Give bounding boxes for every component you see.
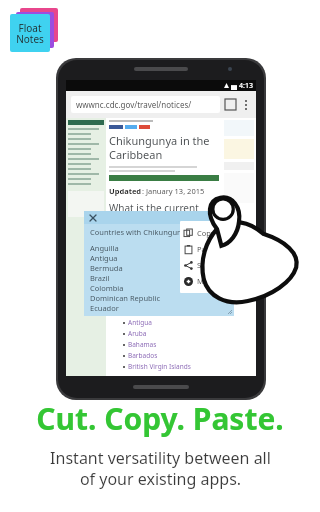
staticText: Paste: [197, 244, 217, 254]
button[interactable]: Barbados: [123, 351, 158, 360]
staticText: 4:13: [239, 81, 253, 91]
button[interactable]: Share: [180, 257, 232, 273]
staticText: Aruba: [128, 329, 147, 338]
staticText: Instant versatility between all of your …: [50, 447, 271, 490]
staticText: Bahamas: [128, 340, 157, 349]
button[interactable]: More: [180, 273, 232, 289]
button[interactable]: Float Notes logo: [4, 2, 66, 58]
button[interactable]: Aruba: [123, 329, 147, 338]
staticText: Barbados: [128, 351, 158, 360]
button[interactable]: Bahamas: [123, 340, 157, 349]
staticText: Updated: [109, 186, 142, 196]
staticText: British Virgin Islands: [128, 362, 191, 371]
button[interactable]: Paste: [180, 241, 232, 257]
staticText: Chikungunya in the Caribbean: [109, 133, 210, 162]
staticText: In December 2013, the World Health: [109, 229, 219, 249]
staticText: More: [197, 276, 216, 286]
button[interactable]: Tabs: [225, 99, 236, 110]
staticText: Share: [197, 260, 218, 270]
staticText: Anguilla: [90, 243, 119, 253]
staticText: Antigua: [90, 253, 118, 263]
staticText: : January 13, 2015: [142, 186, 205, 196]
button[interactable]: British Virgin Islands: [123, 362, 191, 371]
staticText: wwwnc.cdc.gov/travel/notices/: [76, 99, 192, 110]
staticText: Bermuda: [90, 263, 123, 273]
staticText: Copy: [197, 228, 215, 238]
staticText: Countries with Chikungunya: [90, 227, 190, 237]
button[interactable]: Antigua: [123, 318, 152, 327]
staticText: Colombia: [90, 283, 124, 293]
button[interactable]: Close note: [84, 211, 234, 316]
button[interactable]: wwwnc.cdc.gov/travel/notices/: [71, 96, 220, 113]
other: Tap gesture: [184, 193, 294, 313]
staticText: What is the current situation?: [109, 201, 199, 227]
staticText: Brazil: [90, 273, 110, 283]
staticText: Float Notes: [16, 21, 44, 46]
button[interactable]: More options: [241, 100, 251, 110]
button[interactable]: New note: [220, 213, 230, 223]
button[interactable]: Copy: [180, 225, 232, 241]
staticText: Ecuador: [90, 303, 119, 313]
staticText: Cut. Copy. Paste.: [36, 398, 284, 439]
staticText: Dominican Republic: [90, 293, 161, 303]
staticText: Antigua: [128, 318, 152, 327]
button[interactable]: Close note: [88, 213, 98, 223]
